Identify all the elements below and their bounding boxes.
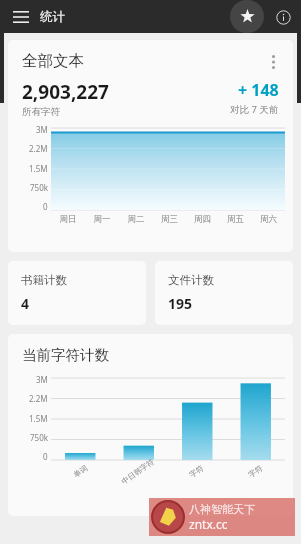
button[interactable]: Menu (8, 4, 34, 30)
staticText: 周五 (219, 214, 252, 225)
staticText: 1.5M (29, 413, 48, 424)
staticText: 周日 (51, 214, 85, 225)
staticText: 对比 7 天前 (230, 103, 279, 116)
button[interactable]: Information (269, 3, 297, 31)
staticText: 字符 (188, 463, 205, 479)
staticText: 书籍计数 (21, 273, 67, 287)
staticText: 周六 (252, 214, 285, 225)
staticText: 统计 (40, 9, 65, 25)
staticText: 周一 (85, 214, 119, 225)
staticText: 所有字符 (22, 106, 60, 118)
staticText: 周二 (119, 214, 153, 225)
staticText: 0 (43, 201, 48, 212)
staticText: 当前字符计数 (22, 346, 109, 364)
button[interactable]: Favorite (230, 0, 264, 33)
staticText: 750k (30, 182, 48, 193)
staticText: + 148 (238, 79, 279, 101)
staticText: 0 (43, 451, 48, 462)
staticText: 195 (168, 294, 193, 313)
staticText: 文件计数 (168, 273, 214, 287)
staticText: 八神智能天下 (189, 502, 255, 516)
staticText: 字符 (247, 463, 264, 479)
staticText: 2.2M (29, 393, 48, 404)
staticText: 单词 (72, 463, 89, 479)
staticText: 周四 (186, 214, 219, 225)
staticText: 2,903,227 (22, 79, 109, 105)
staticText: 中日韩字符 (120, 457, 156, 486)
staticText: 全部文本 (22, 51, 84, 71)
staticText: zntx.cc (189, 516, 228, 532)
staticText: 2.2M (29, 143, 48, 154)
staticText: 3M (36, 124, 48, 135)
staticText: 750k (30, 432, 48, 443)
staticText: 3M (36, 374, 48, 385)
staticText: 4 (21, 294, 30, 313)
staticText: 周三 (153, 214, 186, 225)
button[interactable]: More options (263, 51, 283, 73)
staticText: 1.5M (29, 163, 48, 174)
